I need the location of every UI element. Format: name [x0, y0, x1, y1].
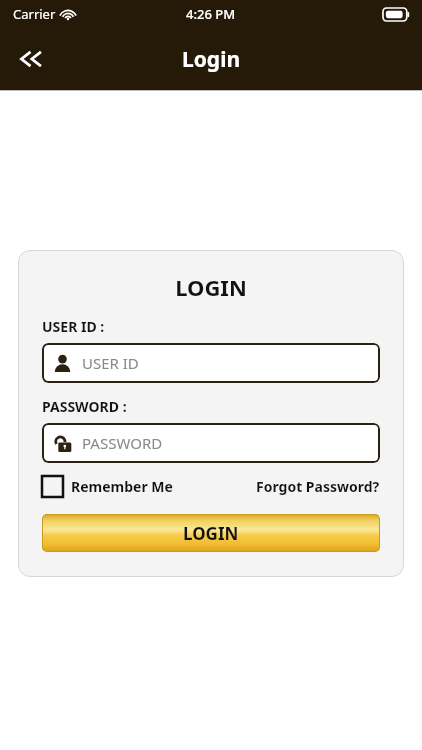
button[interactable]: USER ID [42, 343, 380, 383]
staticText: Login [182, 45, 241, 74]
button[interactable]: Back [6, 35, 54, 83]
staticText: USER ID : [42, 317, 105, 336]
button[interactable]: Remember Me [42, 476, 173, 497]
button[interactable]: LOGIN [42, 514, 380, 552]
button[interactable]: Forgot Password? [256, 477, 380, 496]
staticText: USER ID [82, 353, 139, 373]
staticText: Remember Me [71, 477, 173, 496]
staticText: Carrier [13, 5, 56, 23]
button[interactable]: PASSWORD [42, 423, 380, 463]
staticText: Forgot Password? [256, 477, 380, 496]
staticText: LOGIN [42, 272, 380, 302]
staticText: PASSWORD : [42, 397, 127, 416]
staticText: 4:26 PM [186, 5, 236, 23]
staticText: PASSWORD [82, 433, 163, 453]
staticText: LOGIN [183, 522, 239, 545]
